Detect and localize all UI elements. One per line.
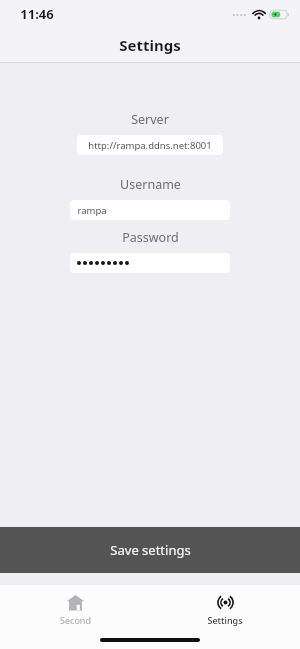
staticText: rampa (77, 204, 107, 217)
staticText: http://rampa.ddns.net:8001 (88, 139, 212, 152)
button[interactable]: http://rampa.ddns.net:8001 (77, 135, 223, 155)
button[interactable]: rampa (70, 200, 230, 220)
other: Settings (216, 593, 235, 612)
staticText: Second (60, 614, 91, 626)
staticText: Settings (119, 35, 181, 55)
button[interactable]: Save settings (0, 527, 300, 573)
button[interactable] (70, 253, 230, 273)
staticText: Save settings (110, 541, 191, 559)
button[interactable]: Second (0, 590, 150, 626)
staticText: 11:46 (20, 5, 54, 23)
button[interactable]: Settings (150, 590, 300, 626)
staticText: Settings (207, 614, 243, 626)
staticText: Server (131, 111, 169, 128)
other: Second (66, 593, 85, 612)
staticText: Username (120, 176, 181, 193)
staticText: Password (122, 229, 179, 246)
